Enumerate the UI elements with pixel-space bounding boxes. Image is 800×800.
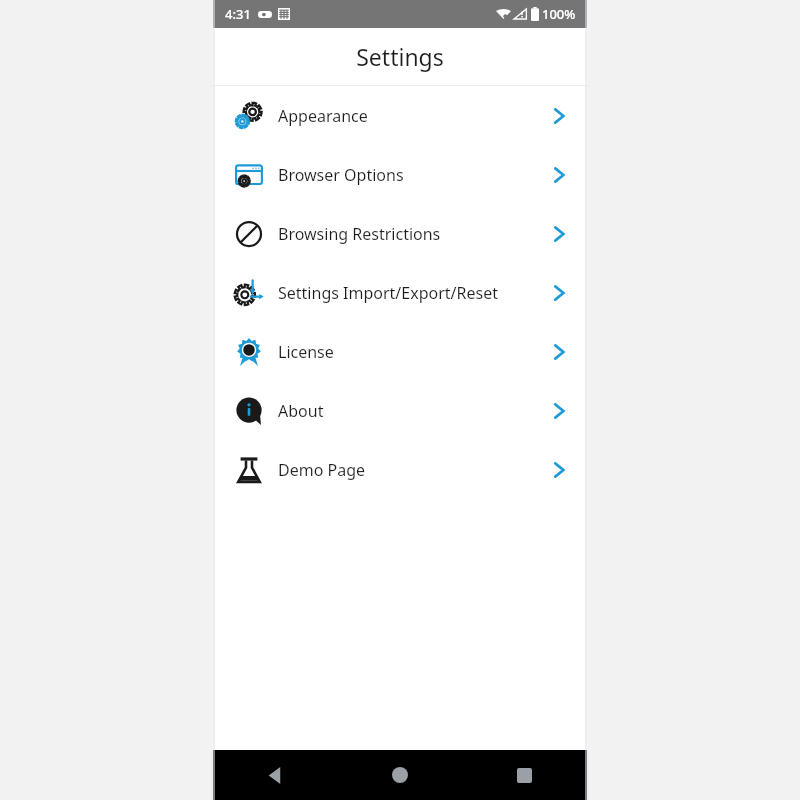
button[interactable]: License	[213, 322, 587, 381]
staticText: Appearance	[278, 105, 548, 127]
staticText: 100%	[542, 5, 576, 23]
staticText: About	[278, 400, 548, 422]
button[interactable]: Settings Import/Export/Reset	[213, 263, 587, 322]
staticText: Browsing Restrictions	[278, 223, 548, 245]
staticText: License	[278, 341, 548, 363]
button[interactable]: Appearance	[213, 86, 587, 145]
button[interactable]: Browser Options	[213, 145, 587, 204]
staticText: 4:31	[225, 5, 251, 23]
staticText: Settings	[356, 41, 444, 72]
button[interactable]: Home	[337, 750, 462, 800]
button[interactable]: Browsing Restrictions	[213, 204, 587, 263]
button[interactable]: Demo Page	[213, 440, 587, 499]
button[interactable]: About	[213, 381, 587, 440]
staticText: Settings Import/Export/Reset	[278, 282, 548, 304]
button[interactable]: Recent apps	[462, 750, 587, 800]
staticText: Browser Options	[278, 164, 548, 186]
staticText: Demo Page	[278, 459, 548, 481]
button[interactable]: Back	[213, 750, 337, 800]
